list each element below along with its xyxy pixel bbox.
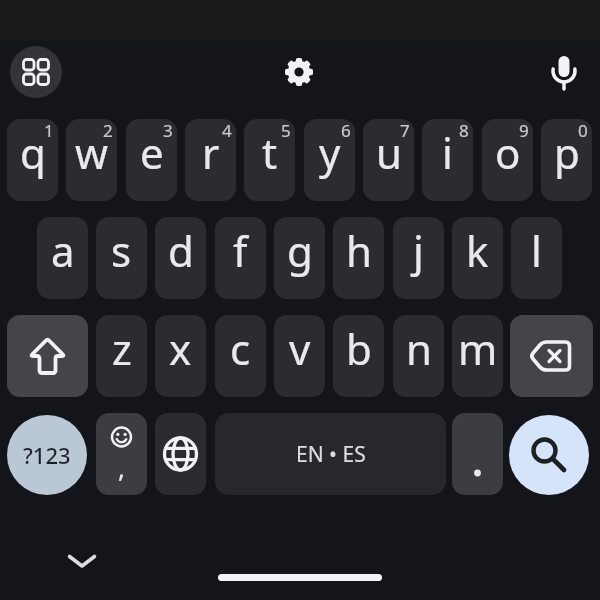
staticText: n xyxy=(406,320,432,377)
button[interactable]: o xyxy=(482,119,533,201)
button[interactable] xyxy=(277,50,321,94)
button[interactable]: EN • ES xyxy=(215,413,446,495)
staticText: 3 xyxy=(163,119,173,142)
staticText: t xyxy=(262,124,278,181)
staticText: a xyxy=(51,222,75,279)
staticText: g xyxy=(287,222,313,279)
staticText: l xyxy=(531,222,542,279)
button[interactable]: c xyxy=(215,315,266,397)
staticText: m xyxy=(458,320,498,377)
staticText: 0 xyxy=(578,119,588,142)
button[interactable]: d xyxy=(155,217,206,299)
button[interactable]: j xyxy=(393,217,444,299)
button[interactable]: a xyxy=(37,217,88,299)
button[interactable]: z xyxy=(96,315,147,397)
button[interactable] xyxy=(10,46,62,98)
staticText: 2 xyxy=(103,119,113,142)
button[interactable]: l xyxy=(511,217,562,299)
button[interactable]: k xyxy=(452,217,503,299)
button[interactable]: ?123 xyxy=(7,415,87,495)
button[interactable] xyxy=(510,315,593,397)
button[interactable]: g xyxy=(274,217,325,299)
staticText: 1 xyxy=(44,119,54,142)
button[interactable] xyxy=(542,50,586,94)
button[interactable]: x xyxy=(155,315,206,397)
button[interactable]: h xyxy=(333,217,384,299)
staticText: x xyxy=(169,320,192,377)
staticText: c xyxy=(230,320,251,377)
button[interactable]: f xyxy=(215,217,266,299)
staticText: q xyxy=(20,124,46,181)
button[interactable] xyxy=(66,548,98,574)
button[interactable]: e xyxy=(126,119,177,201)
button[interactable]: r xyxy=(185,119,236,201)
staticText: y xyxy=(319,124,341,181)
staticText: e xyxy=(140,124,164,181)
button[interactable]: s xyxy=(96,217,147,299)
button[interactable] xyxy=(509,415,589,495)
button[interactable]: v xyxy=(274,315,325,397)
staticText: z xyxy=(112,320,132,377)
button[interactable]: p xyxy=(541,119,592,201)
staticText: 5 xyxy=(281,119,291,142)
staticText: i xyxy=(442,124,453,181)
staticText: 7 xyxy=(400,119,410,142)
button[interactable]: , xyxy=(96,413,147,495)
button[interactable]: q xyxy=(7,119,58,201)
staticText: 4 xyxy=(222,119,232,142)
staticText: s xyxy=(111,222,132,279)
staticText: 9 xyxy=(519,119,529,142)
staticText: ?123 xyxy=(23,440,71,470)
staticText: 6 xyxy=(341,119,351,142)
button[interactable]: b xyxy=(333,315,384,397)
button[interactable]: m xyxy=(452,315,503,397)
staticText: f xyxy=(233,222,248,279)
button[interactable]: w xyxy=(66,119,117,201)
staticText: d xyxy=(168,222,194,279)
button[interactable] xyxy=(452,413,503,495)
staticText: h xyxy=(346,222,372,279)
button[interactable] xyxy=(155,413,206,495)
staticText: EN • ES xyxy=(296,440,366,469)
staticText: , xyxy=(118,450,125,485)
button[interactable]: y xyxy=(304,119,355,201)
button[interactable] xyxy=(7,315,88,397)
staticText: w xyxy=(75,124,109,181)
button[interactable]: n xyxy=(393,315,444,397)
staticText: u xyxy=(376,124,402,181)
staticText: b xyxy=(346,320,372,377)
staticText: k xyxy=(466,222,489,279)
staticText: r xyxy=(202,124,220,181)
staticText: 8 xyxy=(459,119,469,142)
button[interactable]: t xyxy=(244,119,295,201)
button[interactable]: i xyxy=(422,119,473,201)
staticText: o xyxy=(495,124,521,181)
button[interactable]: u xyxy=(363,119,414,201)
staticText: v xyxy=(289,320,311,377)
staticText: j xyxy=(413,222,424,279)
staticText: p xyxy=(554,124,580,181)
